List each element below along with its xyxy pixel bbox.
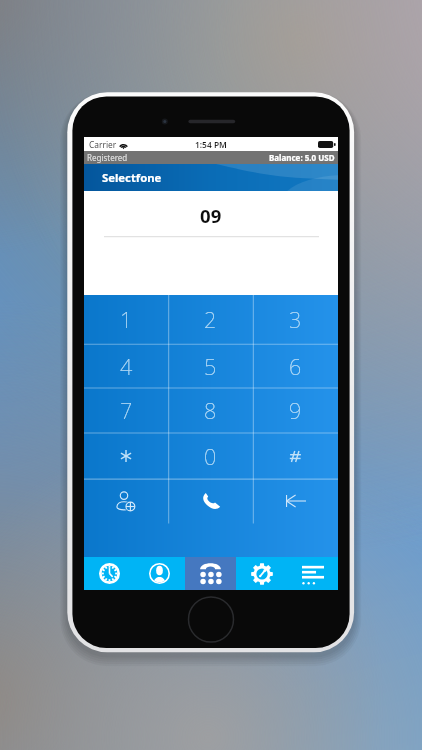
- staticText: Selectfone: [102, 170, 162, 185]
- staticText: 09: [200, 203, 222, 228]
- button[interactable]: 6: [253, 344, 338, 388]
- staticText: 8: [204, 396, 217, 425]
- staticText: 3: [289, 305, 302, 334]
- button[interactable]: 2: [168, 295, 253, 344]
- button[interactable]: Settings: [236, 557, 287, 590]
- staticText: 5: [204, 352, 217, 381]
- staticText: Registered: [87, 152, 128, 163]
- button[interactable]: 1: [84, 295, 168, 344]
- staticText: 1:54 PM: [195, 139, 227, 150]
- staticText: 1: [120, 305, 133, 334]
- button[interactable]: 3: [253, 295, 338, 344]
- staticText: 4: [120, 352, 133, 381]
- button[interactable]: 7: [84, 388, 168, 433]
- button[interactable]: 9: [253, 388, 338, 433]
- staticText: Balance: 5.0 USD: [269, 152, 335, 163]
- button[interactable]: [253, 433, 338, 479]
- staticText: 9: [289, 396, 302, 425]
- button[interactable]: 8: [168, 388, 253, 433]
- staticText: Carrier: [89, 139, 117, 150]
- button[interactable]: Recent calls: [84, 557, 134, 590]
- button[interactable]: 5: [168, 344, 253, 388]
- button[interactable]: Keypad: [185, 557, 236, 590]
- button[interactable]: Backspace: [253, 479, 338, 523]
- button[interactable]: Add contact: [84, 479, 168, 523]
- button[interactable]: 0: [168, 433, 253, 479]
- button[interactable]: Contacts: [134, 557, 185, 590]
- staticText: 2: [204, 305, 217, 334]
- button[interactable]: [84, 433, 168, 479]
- button[interactable]: Call: [168, 479, 253, 523]
- staticText: 7: [120, 396, 133, 425]
- button[interactable]: 4: [84, 344, 168, 388]
- staticText: 0: [204, 442, 217, 471]
- staticText: 6: [289, 352, 302, 381]
- button[interactable]: More: [287, 557, 338, 590]
